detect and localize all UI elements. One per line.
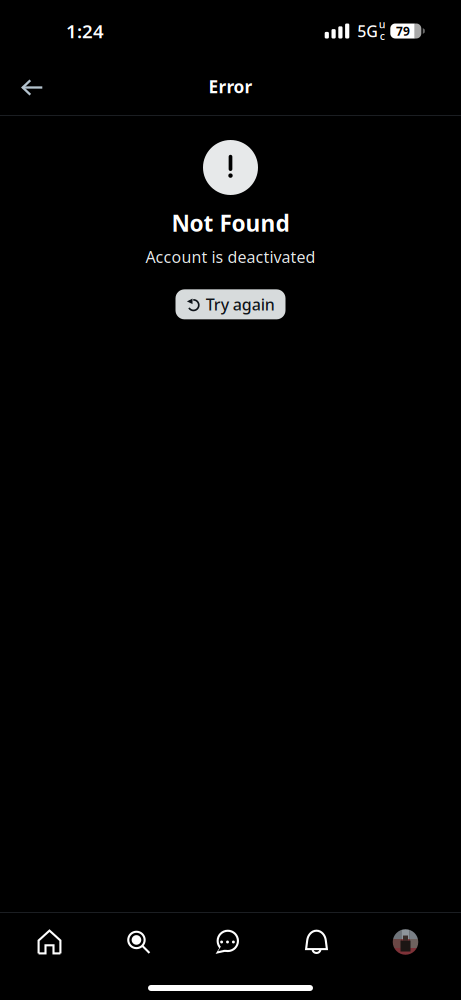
staticText: u xyxy=(379,17,386,31)
staticText: 1:24 xyxy=(66,19,104,43)
button[interactable]: Home xyxy=(5,916,94,968)
button[interactable]: Messages xyxy=(183,916,272,968)
staticText: 79 xyxy=(396,23,410,39)
staticText: Account is deactivated xyxy=(145,246,315,267)
button[interactable]: Try again xyxy=(175,289,285,319)
button[interactable]: Notifications xyxy=(272,916,361,968)
staticText: c xyxy=(380,29,385,43)
button[interactable]: Search xyxy=(94,916,183,968)
staticText: Try again xyxy=(206,294,275,315)
staticText: Not Found xyxy=(171,208,289,238)
button[interactable]: Profile xyxy=(361,916,450,968)
button[interactable]: Back xyxy=(0,64,57,109)
staticText: 5G xyxy=(357,20,378,42)
staticText: Error xyxy=(208,75,252,98)
